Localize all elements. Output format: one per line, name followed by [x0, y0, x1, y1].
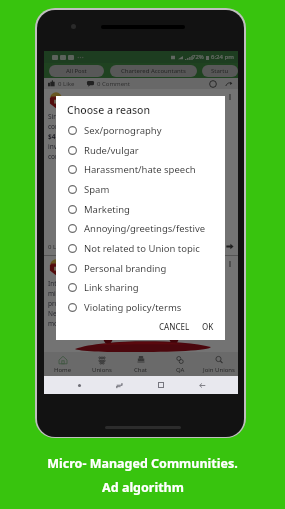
button[interactable]: Unions	[82, 354, 121, 374]
staticText: compliance for a new startup with	[48, 122, 152, 131]
staticText: CANCEL	[159, 321, 190, 332]
staticText: Anonymous	[68, 94, 104, 102]
staticText: Violating policy/terms	[84, 301, 182, 314]
button[interactable]: QA	[160, 354, 199, 374]
staticText: mid-level accountants. What is the	[48, 289, 153, 298]
staticText: Join Unions	[203, 366, 235, 374]
staticText: Interested in joining a union for	[48, 279, 145, 288]
staticText: confirm the procedure?	[48, 152, 120, 161]
button[interactable]: Back	[196, 379, 208, 391]
staticText: Chat	[134, 366, 148, 374]
button[interactable]: OK	[198, 317, 218, 336]
button[interactable]: Join Unions	[199, 354, 238, 374]
button[interactable]: Home	[155, 379, 167, 391]
staticText: 2 hours ago	[68, 269, 97, 276]
button[interactable]: All Post	[49, 65, 104, 77]
staticText: 0 Comment	[79, 243, 112, 251]
staticText: Spam	[84, 183, 110, 196]
staticText: Micro- Managed Communities.	[47, 455, 238, 472]
staticText: Not related to Union topic	[84, 242, 200, 255]
button[interactable]: Harassment/hate speech	[56, 160, 225, 179]
staticText: All Post	[66, 67, 87, 75]
staticText: 0 Like	[48, 243, 65, 251]
button[interactable]: Link sharing	[56, 278, 225, 297]
button[interactable]: Violating policy/terms	[56, 297, 225, 317]
staticText: process and what documents are	[48, 299, 150, 308]
staticText: Sir I have an inquiry about tax	[48, 112, 140, 121]
staticText: OK	[202, 321, 214, 332]
button[interactable]: Home	[44, 354, 82, 374]
staticText: Ad algorithm	[102, 479, 184, 496]
staticText: Marketing	[84, 203, 130, 216]
staticText: 72%	[192, 53, 204, 61]
staticText: Unions	[92, 366, 112, 374]
button[interactable]: Not related to Union topic	[56, 238, 225, 258]
button[interactable]: Chat	[121, 354, 160, 374]
staticText: Sex/pornography	[84, 124, 162, 137]
staticText: Choose a reason	[67, 103, 151, 117]
staticText: Link sharing	[84, 281, 139, 294]
staticText: more details here.	[48, 319, 104, 328]
staticText: 2 hours ago	[68, 102, 97, 109]
staticText: Personal branding	[84, 262, 167, 275]
staticText: Rude/vulgar	[84, 144, 139, 157]
staticText: QA	[176, 366, 185, 374]
button[interactable]: Spam	[56, 179, 225, 199]
button[interactable]: Assistant	[74, 380, 84, 390]
staticText: Home	[54, 366, 72, 374]
staticText: Startu	[211, 67, 229, 75]
staticText: Needed to apply? Please share	[48, 309, 142, 318]
button[interactable]: CANCEL	[155, 317, 194, 336]
button[interactable]: Marketing	[56, 199, 225, 219]
button[interactable]: Annoying/greetings/festive	[56, 219, 225, 238]
staticText: Harassment/hate speech	[84, 163, 196, 176]
button[interactable]: Keyboard	[113, 379, 125, 391]
button[interactable]: Sex/pornography	[56, 120, 225, 140]
staticText: Annoying/greetings/festive	[84, 222, 206, 235]
staticText: $4M revenue. Can someone	[48, 132, 137, 141]
staticText: 6:24 pm	[211, 53, 234, 61]
button[interactable]: Chartered Accountants	[110, 65, 197, 77]
staticText: Chartered Accountants	[121, 67, 186, 75]
button[interactable]: Startu	[202, 65, 238, 77]
staticText: 0 Comment	[97, 80, 130, 88]
staticText: Anonymous	[68, 261, 104, 269]
staticText: involved in corporate filing	[48, 142, 130, 151]
button[interactable]: Rude/vulgar	[56, 140, 225, 160]
button[interactable]: Personal branding	[56, 258, 225, 278]
staticText: 0 Like	[58, 80, 75, 88]
